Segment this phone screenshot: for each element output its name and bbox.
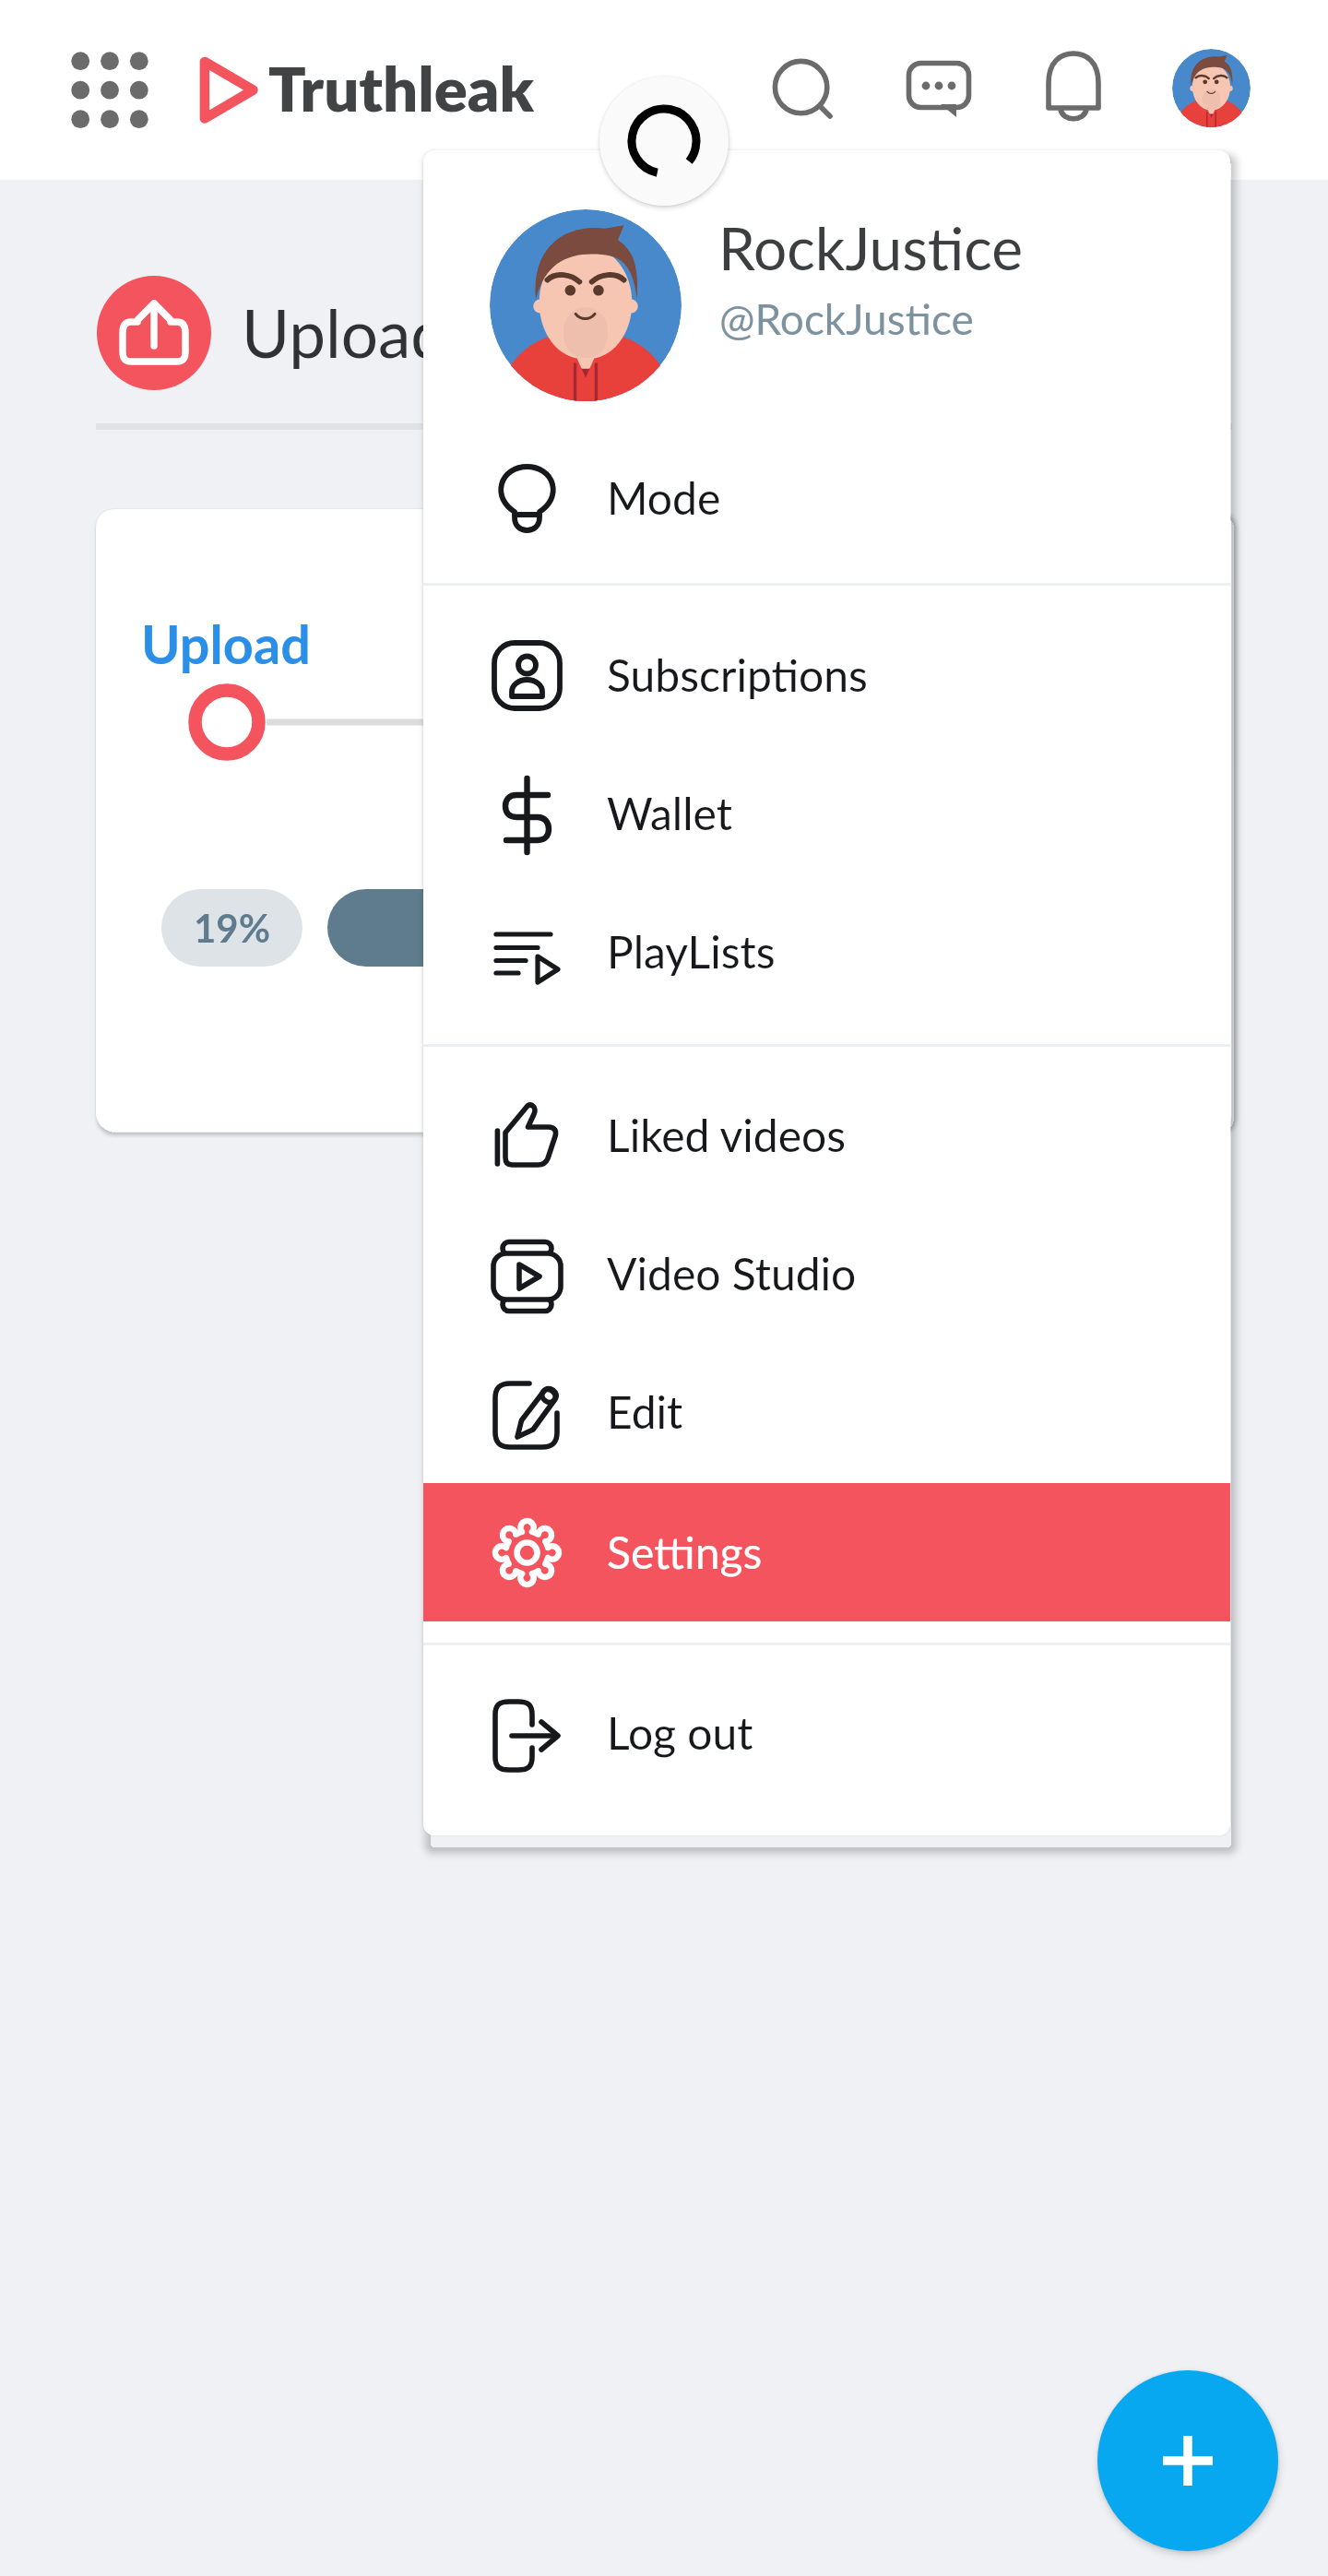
staticText: Truthleak — [268, 51, 534, 125]
staticText: RockJustice — [718, 212, 1024, 283]
staticText: Video Studio — [607, 1247, 857, 1300]
button[interactable]: Truthleak — [196, 46, 539, 134]
button[interactable]: Log out — [423, 1664, 1230, 1802]
button[interactable]: Liked videos — [423, 1066, 1230, 1205]
button[interactable]: Apps — [71, 52, 157, 137]
button[interactable]: 19% — [161, 889, 302, 967]
button[interactable] — [327, 889, 724, 967]
button[interactable]: RockJustice — [423, 150, 1230, 427]
staticText: Wallet — [607, 787, 732, 840]
button[interactable]: Wallet — [423, 744, 1230, 883]
staticText: 19% — [194, 905, 271, 951]
button[interactable]: Mode — [423, 429, 1230, 567]
button[interactable]: Messages — [904, 57, 978, 131]
staticText: Mode — [607, 471, 721, 525]
staticText: Log out — [607, 1706, 753, 1760]
staticText: Upload — [141, 611, 311, 675]
button[interactable]: PlayLists — [423, 883, 1230, 1021]
staticText: Edit — [607, 1385, 683, 1439]
button[interactable]: Subscriptions — [423, 606, 1230, 744]
staticText: Settings — [607, 1525, 763, 1579]
staticText: Upload — [242, 293, 448, 372]
button[interactable]: Video Studio — [423, 1205, 1230, 1343]
staticText: Liked videos — [607, 1109, 847, 1162]
button[interactable]: Search — [767, 53, 837, 124]
button[interactable]: Settings — [423, 1483, 1230, 1621]
staticText: Subscriptions — [607, 648, 868, 702]
button[interactable]: Edit — [423, 1343, 1230, 1481]
button[interactable]: Notifications — [1045, 48, 1119, 122]
button[interactable]: Add — [1097, 2370, 1278, 2551]
staticText: PlayLists — [607, 925, 776, 979]
button[interactable]: Upload — [97, 276, 493, 390]
staticText: @RockJustice — [719, 293, 974, 344]
button[interactable]: Profile — [1172, 49, 1251, 127]
